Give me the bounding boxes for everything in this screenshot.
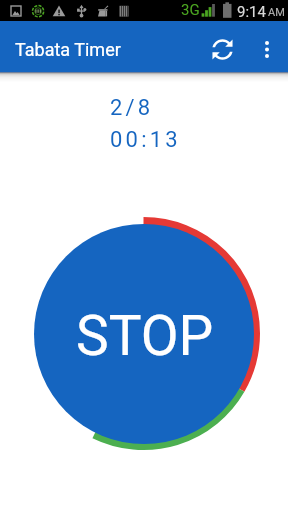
staticText: 9:14 [237,3,266,21]
button[interactable]: Refresh [198,25,246,73]
button[interactable]: STOP [34,224,254,444]
staticText: Tabata Timer [15,39,121,60]
button[interactable]: More options [245,25,288,73]
staticText: 2/8 [110,95,154,121]
staticText: 3G [181,1,200,19]
staticText: STOP [76,304,214,368]
staticText: AM [268,6,285,19]
staticText: 00:13 [110,127,181,153]
